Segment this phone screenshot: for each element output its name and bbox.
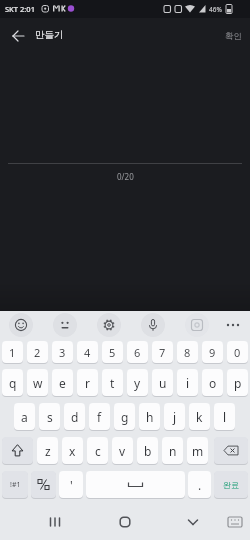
staticText: c (95, 443, 101, 459)
button[interactable] (141, 313, 165, 337)
button[interactable]: y (127, 369, 148, 396)
button[interactable]: x (62, 437, 83, 464)
staticText: a (21, 409, 28, 425)
button[interactable]: p (227, 369, 248, 396)
button[interactable]: 6 (127, 341, 148, 363)
staticText: n (169, 443, 177, 459)
staticText: h (146, 409, 154, 425)
button[interactable]: v (112, 437, 133, 464)
button[interactable]: s (39, 403, 60, 430)
staticText: 1 (9, 345, 16, 360)
staticText: e (59, 375, 66, 391)
button[interactable]: z (37, 437, 58, 464)
staticText: 0 (234, 345, 241, 360)
staticText: b (144, 443, 152, 459)
staticText: SKT 2:01 (5, 4, 35, 14)
staticText: s (47, 409, 53, 425)
staticText: u (159, 375, 167, 391)
staticText: 확인 (225, 31, 242, 42)
button[interactable]: o (202, 369, 223, 396)
button[interactable]: 5 (102, 341, 123, 363)
staticText: t (110, 375, 115, 391)
button[interactable]: ' (59, 471, 83, 498)
button[interactable]: 9 (202, 341, 223, 363)
button[interactable] (53, 313, 77, 337)
button[interactable]: q (2, 369, 23, 396)
button[interactable] (2, 437, 33, 464)
button[interactable]: . (188, 471, 211, 498)
button[interactable]: a (14, 403, 35, 430)
button[interactable]: g (114, 403, 135, 430)
staticText: k (196, 409, 203, 425)
button[interactable]: b (137, 437, 158, 464)
staticText: 46% (209, 5, 222, 14)
staticText: p (234, 375, 242, 391)
button[interactable]: 1 (2, 341, 23, 363)
button[interactable]: 0 (227, 341, 248, 363)
button[interactable] (214, 437, 248, 464)
staticText: r (85, 375, 90, 391)
staticText: w (33, 375, 43, 391)
button[interactable]: 7 (152, 341, 173, 363)
button[interactable] (86, 471, 185, 498)
button[interactable]: 4 (77, 341, 98, 363)
button[interactable]: d (64, 403, 85, 430)
button[interactable]: r (77, 369, 98, 396)
staticText: 0/20 (117, 171, 134, 182)
button[interactable] (178, 507, 208, 537)
staticText: 3 (59, 345, 66, 360)
button[interactable] (222, 509, 248, 535)
button[interactable]: u (152, 369, 173, 396)
staticText: y (134, 375, 141, 391)
staticText: 8 (184, 345, 191, 360)
button[interactable]: 확인 (218, 24, 248, 48)
staticText: l (223, 409, 227, 425)
button[interactable]: t (102, 369, 123, 396)
button[interactable] (8, 25, 30, 47)
button[interactable] (224, 313, 246, 337)
staticText: 9 (209, 345, 216, 360)
button[interactable]: !#1 (2, 471, 28, 498)
staticText: 완료 (223, 480, 239, 490)
button[interactable]: m (187, 437, 208, 464)
staticText: g (121, 409, 129, 425)
button[interactable]: f (89, 403, 110, 430)
button[interactable] (110, 507, 140, 537)
button[interactable]: e (52, 369, 73, 396)
button[interactable] (31, 471, 56, 498)
staticText: f (97, 409, 102, 425)
button[interactable]: k (189, 403, 210, 430)
button[interactable] (97, 313, 121, 337)
staticText: 만들기 (35, 29, 64, 41)
staticText: 2 (34, 345, 41, 360)
staticText: q (9, 375, 17, 391)
button[interactable]: 완료 (214, 471, 248, 498)
staticText: . (198, 477, 202, 493)
staticText: v (119, 443, 126, 459)
button[interactable]: c (87, 437, 108, 464)
staticText: 6 (134, 345, 141, 360)
staticText: 5 (109, 345, 116, 360)
button[interactable]: 8 (177, 341, 198, 363)
button[interactable] (185, 313, 209, 337)
staticText: o (209, 375, 217, 391)
button[interactable] (9, 313, 33, 337)
button[interactable]: h (139, 403, 160, 430)
button[interactable]: j (164, 403, 185, 430)
button[interactable] (40, 507, 70, 537)
button[interactable]: i (177, 369, 198, 396)
staticText: d (71, 409, 79, 425)
staticText: 7 (159, 345, 166, 360)
button[interactable]: 2 (27, 341, 48, 363)
button[interactable]: w (27, 369, 48, 396)
staticText: !#1 (10, 480, 21, 490)
staticText: ' (70, 477, 73, 493)
button[interactable]: l (214, 403, 235, 430)
staticText: j (173, 409, 177, 425)
staticText: z (45, 443, 51, 459)
staticText: i (186, 375, 190, 391)
staticText: m (192, 443, 204, 459)
button[interactable]: 3 (52, 341, 73, 363)
button[interactable]: n (162, 437, 183, 464)
staticText: x (69, 443, 76, 459)
